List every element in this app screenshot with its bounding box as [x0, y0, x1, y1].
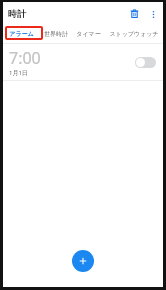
- button[interactable]: 7:00: [3, 44, 163, 80]
- staticText: 時計: [8, 8, 26, 19]
- button[interactable]: 世界時計: [39, 24, 72, 43]
- staticText: 1月1日: [9, 69, 28, 77]
- button[interactable]: Toggle alarm: [135, 57, 156, 68]
- staticText: ストップウォッチ: [109, 30, 159, 38]
- staticText: 世界時計: [44, 30, 68, 38]
- button[interactable]: Add alarm: [72, 250, 94, 272]
- button[interactable]: タイマー: [72, 24, 105, 43]
- button[interactable]: More options: [145, 6, 161, 22]
- button[interactable]: ストップウォッチ: [105, 24, 163, 43]
- button[interactable]: Delete alarms: [126, 5, 143, 22]
- staticText: タイマー: [76, 30, 101, 38]
- staticText: アラーム: [9, 30, 34, 38]
- button[interactable]: アラーム: [3, 24, 39, 43]
- staticText: 7:00: [9, 47, 41, 69]
